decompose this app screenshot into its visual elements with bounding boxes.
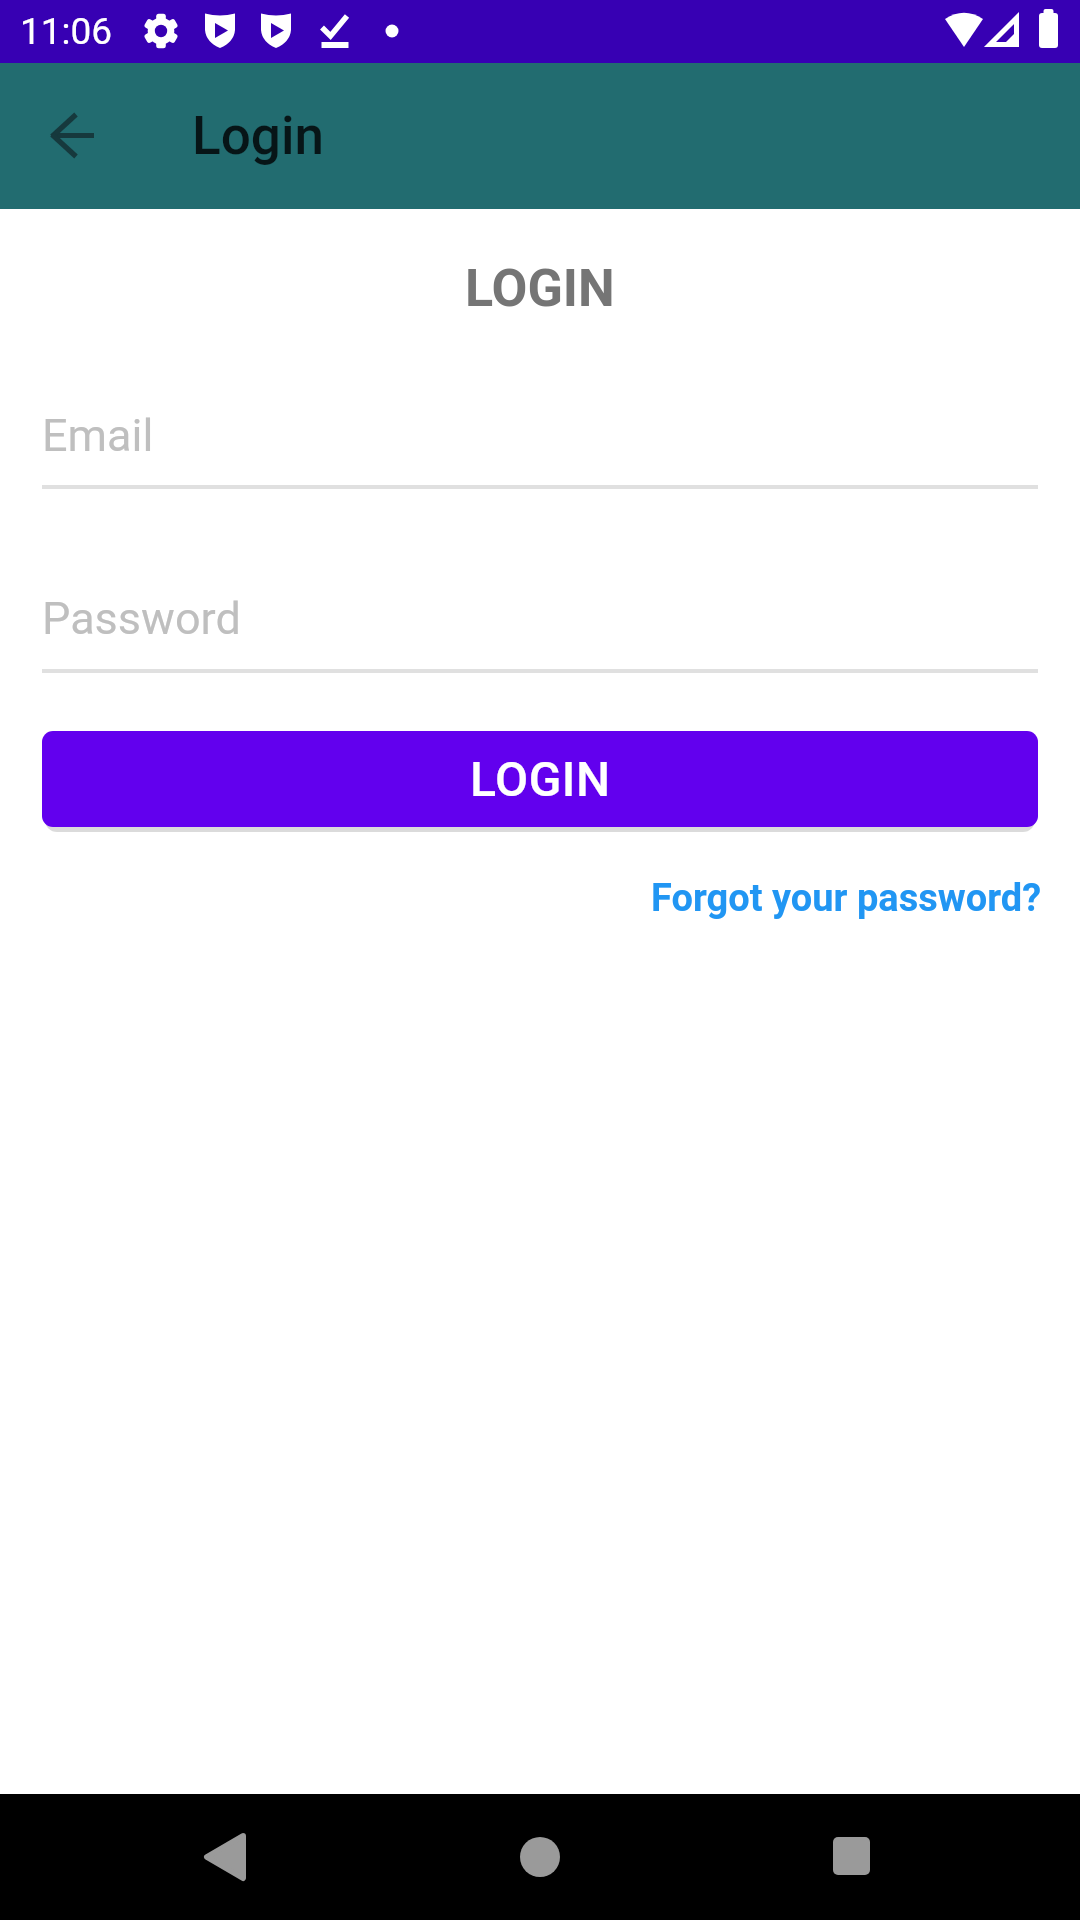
staticText: Password — [42, 592, 241, 645]
button[interactable]: Password — [42, 588, 1038, 648]
staticText: LOGIN — [465, 258, 615, 318]
staticText: Email — [42, 409, 154, 462]
staticText: Login — [192, 105, 324, 166]
staticText: 11:06 — [20, 10, 113, 53]
button[interactable]: Email — [42, 405, 1038, 465]
button[interactable] — [24, 87, 120, 183]
button[interactable] — [470, 1812, 610, 1902]
button[interactable]: LOGIN — [42, 731, 1038, 827]
button[interactable] — [781, 1812, 921, 1902]
staticText: Forgot your password? — [651, 876, 1042, 921]
staticText: LOGIN — [470, 751, 611, 807]
button[interactable] — [155, 1812, 295, 1902]
button[interactable]: Forgot your password? — [651, 876, 1042, 921]
